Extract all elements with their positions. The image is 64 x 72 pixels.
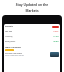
staticText: S&P 500 (5, 30, 12, 32)
button[interactable]: DOW JONES (5, 40, 59, 42)
staticText: +0.35% (53, 40, 59, 42)
staticText: NASDAQ (5, 35, 13, 37)
staticText: DOW JONES (5, 40, 16, 42)
button[interactable]: S&P 500 (5, 30, 59, 32)
staticText: Stay Updated on the Markets (1, 3, 63, 13)
staticText: Markets (5, 25, 13, 28)
button[interactable] (52, 26, 59, 28)
button[interactable]: NASDAQ (5, 35, 59, 37)
staticText: Fed holds rates steady (5, 52, 23, 54)
staticText: +1.14% (53, 35, 59, 37)
staticText: Today's headlines (5, 46, 21, 48)
staticText: -0.82% (53, 30, 59, 32)
staticText: Stocks climbed after decision (5, 55, 24, 57)
